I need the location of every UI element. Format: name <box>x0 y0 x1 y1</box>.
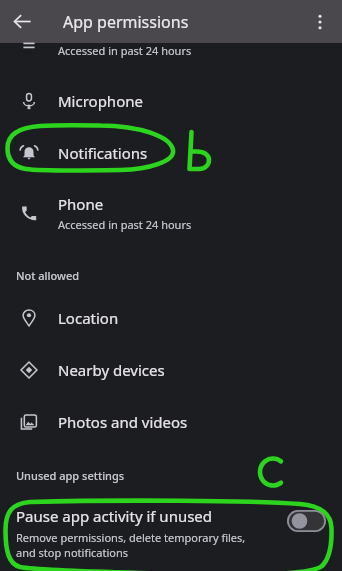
staticText: Photos and videos <box>58 412 188 432</box>
button[interactable]: Photos and videos <box>0 396 342 448</box>
button[interactable]: Pause app activity toggle, off <box>287 510 326 532</box>
button[interactable]: Location <box>0 292 342 344</box>
button[interactable]: Microphone <box>0 75 342 127</box>
staticText: Accessed in past 24 hours <box>58 217 192 232</box>
staticText: Accessed in past 24 hours <box>58 43 192 58</box>
staticText: Nearby devices <box>58 360 165 380</box>
staticText: Remove permissions, delete temporary fil… <box>16 530 246 560</box>
staticText: Notifications <box>58 143 148 163</box>
staticText: Microphone <box>58 91 143 111</box>
button[interactable]: Notifications <box>0 127 342 178</box>
button[interactable]: More options <box>298 0 342 43</box>
staticText: Unused app settings <box>16 468 125 483</box>
button[interactable]: Accessed in past 24 hours <box>0 43 342 75</box>
staticText: Not allowed <box>16 268 80 283</box>
staticText: Pause app activity if unused <box>16 506 213 526</box>
button[interactable]: Back <box>0 0 44 43</box>
staticText: Phone <box>58 194 104 214</box>
button[interactable]: Phone <box>0 178 342 247</box>
button[interactable]: Pause app activity if unused <box>0 496 342 560</box>
staticText: App permissions <box>63 11 189 33</box>
button[interactable]: Nearby devices <box>0 344 342 396</box>
staticText: Location <box>58 308 119 328</box>
